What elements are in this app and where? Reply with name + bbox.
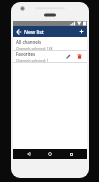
button[interactable]: Add (76, 26, 87, 37)
button[interactable]: Edit (64, 52, 73, 61)
staticText: Channels selected: 1 (16, 58, 49, 62)
staticText: Channels selected: 138 (16, 46, 53, 50)
button[interactable]: Recent apps (66, 149, 76, 159)
staticText: New list (24, 28, 44, 35)
button[interactable]: Home (45, 149, 55, 159)
staticText: Favorites (16, 51, 36, 57)
button[interactable]: Favorites (13, 51, 87, 62)
staticText: All channels (16, 39, 42, 45)
button[interactable]: Back (13, 26, 24, 37)
button[interactable]: Back (24, 149, 34, 159)
button[interactable]: Delete (75, 52, 84, 61)
button[interactable]: All channels (13, 39, 87, 50)
